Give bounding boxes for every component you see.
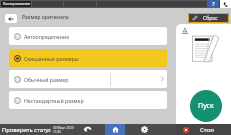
button[interactable]: Home — [105, 124, 125, 135]
staticText: Проверить статус — [2, 126, 52, 134]
button[interactable]: Автоопределение — [9, 27, 167, 45]
staticText: Копирование — [3, 1, 31, 7]
staticText: Пуск — [198, 101, 214, 111]
button[interactable]: Back — [77, 124, 97, 135]
staticText: Автоопределение — [24, 33, 69, 40]
staticText: ? — [212, 0, 215, 8]
staticText: 30 Март 2020 — [53, 126, 74, 130]
button[interactable]: Нестандартный размер — [9, 91, 167, 109]
button[interactable]: Смешанные размеры — [9, 49, 167, 67]
staticText: Нестандартный размер — [24, 97, 84, 104]
button[interactable]: Стоп — [176, 124, 231, 135]
button[interactable]: Пуск — [190, 90, 222, 122]
button[interactable]: Сброс — [188, 13, 229, 23]
staticText: Сброс — [203, 15, 218, 22]
staticText: Обычный размер — [24, 76, 69, 83]
staticText: Размер оригинала — [22, 14, 69, 21]
staticText: 15:35 — [53, 130, 62, 134]
button[interactable]: Settings — [135, 124, 154, 135]
staticText: Смешанные размеры — [24, 55, 79, 62]
button[interactable]: Копирование — [1, 1, 31, 7]
staticText: Стоп — [200, 126, 214, 134]
button[interactable]: Phone — [220, 0, 231, 8]
button[interactable]: Back — [5, 14, 17, 23]
button[interactable]: Help — [207, 0, 219, 8]
button[interactable]: Обычный размер — [9, 70, 167, 88]
